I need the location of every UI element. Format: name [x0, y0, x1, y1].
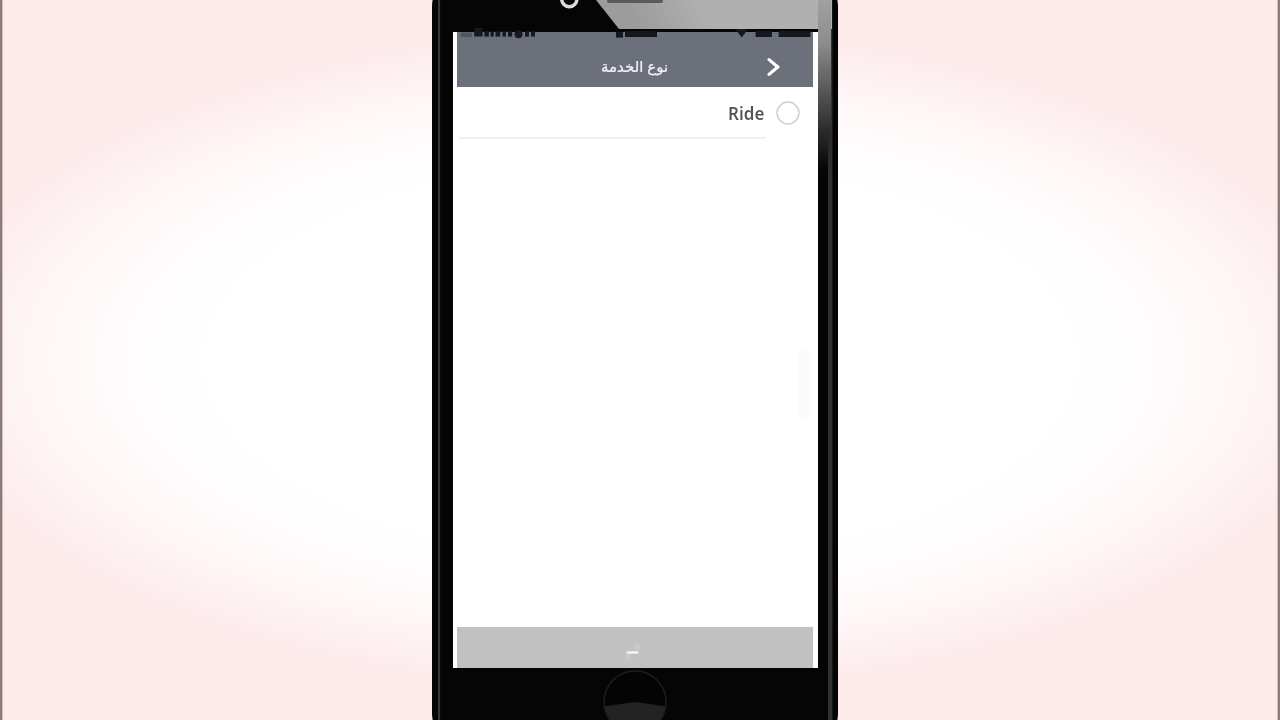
button[interactable]: Back: [759, 53, 787, 81]
staticText: Ride: [728, 102, 765, 125]
staticText: نوع الخدمة: [601, 56, 669, 76]
button[interactable]: Ride: [457, 87, 813, 137]
button[interactable]: نوع الخدمة: [457, 39, 813, 87]
